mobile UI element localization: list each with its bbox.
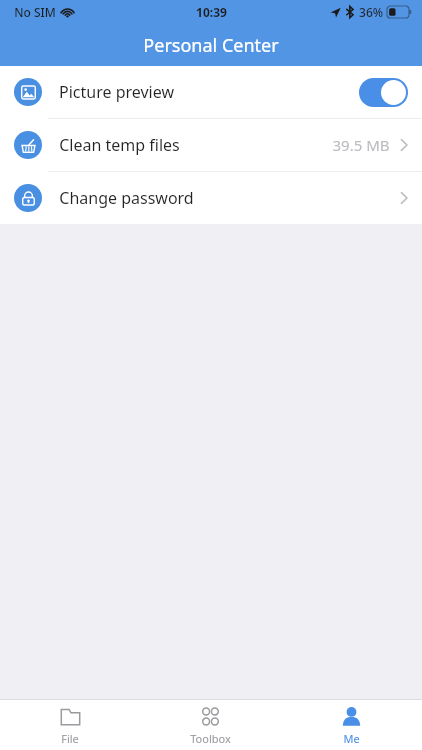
staticText: Toolbox xyxy=(190,731,231,746)
staticText: 39.5 MB xyxy=(332,135,390,155)
staticText: Clean temp files xyxy=(59,134,180,156)
staticText: Change password xyxy=(59,187,194,209)
staticText: 10:39 xyxy=(196,4,227,20)
staticText: 36% xyxy=(359,4,383,20)
other: Change password icon xyxy=(14,184,42,212)
button[interactable]: Picture preview toggle xyxy=(359,78,408,107)
button[interactable]: Picture preview icon xyxy=(0,66,422,119)
other: Picture preview icon xyxy=(14,78,42,106)
button[interactable]: Toolbox xyxy=(140,700,281,750)
staticText: Personal Center xyxy=(143,33,279,58)
staticText: Me xyxy=(343,731,360,746)
button[interactable]: File xyxy=(0,700,140,750)
staticText: Picture preview xyxy=(59,81,174,103)
other: Clean temp files icon xyxy=(14,131,42,159)
staticText: File xyxy=(61,731,79,746)
button[interactable]: Clean temp files icon xyxy=(0,119,422,172)
button[interactable]: Me xyxy=(281,700,422,750)
staticText: No SIM xyxy=(14,4,56,20)
button[interactable]: Change password icon xyxy=(0,172,422,224)
